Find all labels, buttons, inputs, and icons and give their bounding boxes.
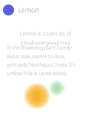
staticText: Lemon is a species of <box>19 30 71 37</box>
staticText: small evergreen tree <box>20 39 70 46</box>
staticText: Rutaceae, native to Asia, <box>7 53 65 60</box>
staticText: primarily Northeast India. Its <box>7 61 76 68</box>
staticText: in the flowering plant family <box>7 44 72 51</box>
staticText: Lemon <box>18 6 39 14</box>
staticText: yellow fruit is used widely <box>7 70 67 77</box>
button[interactable]: Lemon <box>3 4 59 16</box>
